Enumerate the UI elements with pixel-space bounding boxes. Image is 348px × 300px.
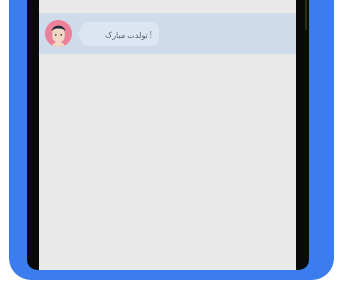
staticText: تولدت مبارک ! bbox=[105, 29, 152, 40]
button[interactable]: تولدت مبارک ! bbox=[81, 22, 159, 46]
button[interactable]: Contact avatar bbox=[39, 13, 296, 54]
button[interactable]: Contact avatar bbox=[45, 20, 72, 47]
